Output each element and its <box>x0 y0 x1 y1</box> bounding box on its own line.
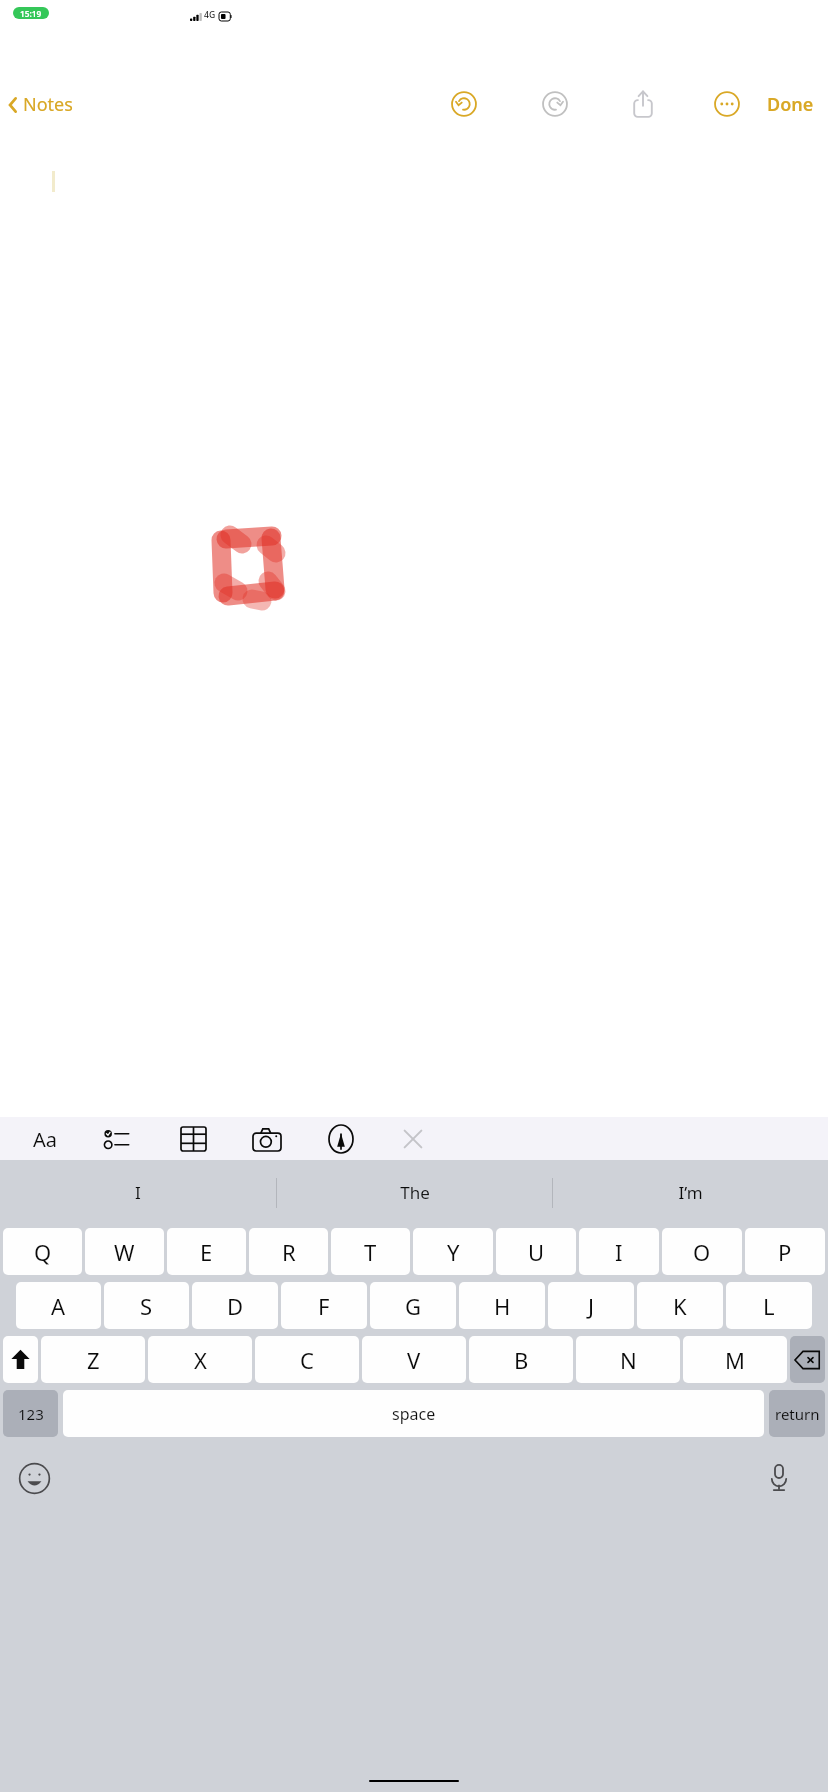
button[interactable]: return <box>769 1390 825 1437</box>
staticText: 123 <box>18 1404 44 1424</box>
button[interactable]: H <box>459 1282 545 1329</box>
staticText: Z <box>87 1345 100 1375</box>
staticText: E <box>200 1237 213 1267</box>
staticText: L <box>763 1291 775 1321</box>
button[interactable]: space <box>63 1390 764 1437</box>
staticText: D <box>227 1291 244 1321</box>
button[interactable]: A <box>16 1282 101 1329</box>
staticText: G <box>405 1291 422 1321</box>
button[interactable]: Z <box>41 1336 145 1383</box>
button[interactable]: Shift <box>3 1336 38 1383</box>
button[interactable]: Table <box>174 1119 212 1159</box>
button[interactable]: J <box>548 1282 634 1329</box>
button[interactable]: R <box>249 1228 328 1275</box>
button[interactable]: M <box>683 1336 787 1383</box>
button[interactable]: G <box>370 1282 456 1329</box>
staticText: S <box>140 1291 153 1321</box>
button[interactable]: I <box>579 1228 659 1275</box>
button[interactable]: The <box>277 1160 552 1225</box>
button[interactable]: I <box>0 1160 276 1225</box>
staticText: H <box>494 1291 511 1321</box>
button[interactable]: V <box>362 1336 466 1383</box>
button[interactable]: D <box>192 1282 278 1329</box>
staticText: Y <box>447 1237 460 1267</box>
staticText: K <box>673 1291 687 1321</box>
staticText: M <box>725 1345 745 1375</box>
staticText: F <box>318 1291 330 1321</box>
staticText: O <box>693 1237 711 1267</box>
staticText: 15:19 <box>20 8 42 19</box>
staticText: A <box>51 1291 66 1321</box>
button[interactable]: Done <box>757 84 824 125</box>
button[interactable]: Dictate <box>758 1457 800 1499</box>
staticText: X <box>194 1345 207 1375</box>
staticText: R <box>282 1237 296 1267</box>
staticText: C <box>300 1345 314 1375</box>
staticText: J <box>588 1291 595 1321</box>
staticText: Q <box>34 1237 52 1267</box>
button[interactable]: K <box>637 1282 723 1329</box>
staticText: V <box>407 1345 421 1375</box>
staticText: Done <box>767 92 814 117</box>
button[interactable]: B <box>469 1336 573 1383</box>
button[interactable]: Y <box>413 1228 493 1275</box>
button[interactable]: U <box>496 1228 576 1275</box>
staticText: The <box>400 1181 430 1204</box>
button[interactable]: Undo <box>442 82 486 126</box>
button[interactable]: Checklist <box>98 1119 136 1159</box>
button[interactable]: N <box>576 1336 680 1383</box>
staticText: B <box>514 1345 529 1375</box>
button[interactable]: Emoji <box>14 1458 54 1498</box>
button[interactable]: 123 <box>3 1390 58 1437</box>
staticText: I <box>135 1181 141 1204</box>
button[interactable]: T <box>331 1228 410 1275</box>
button[interactable]: X <box>148 1336 252 1383</box>
staticText: W <box>114 1237 135 1267</box>
button[interactable]: P <box>745 1228 825 1275</box>
button[interactable]: L <box>726 1282 812 1329</box>
button[interactable]: O <box>662 1228 742 1275</box>
button[interactable]: I’m <box>553 1160 828 1225</box>
button[interactable]: Markup <box>322 1119 360 1159</box>
button[interactable]: Backspace <box>790 1336 825 1383</box>
button[interactable]: Share <box>621 82 665 126</box>
staticText: return <box>775 1404 820 1424</box>
button[interactable]: W <box>85 1228 164 1275</box>
button[interactable]: Camera <box>248 1119 286 1159</box>
button[interactable]: Close keyboard <box>394 1119 432 1159</box>
staticText: T <box>364 1237 377 1267</box>
button[interactable]: Notes <box>7 92 73 117</box>
staticText: space <box>392 1403 436 1425</box>
staticText: I <box>615 1237 623 1267</box>
button[interactable]: Q <box>3 1228 82 1275</box>
staticText: Aa <box>33 1126 57 1153</box>
button[interactable]: E <box>167 1228 246 1275</box>
staticText: Notes <box>23 92 73 117</box>
staticText: U <box>528 1237 545 1267</box>
button[interactable]: Format <box>26 1119 64 1159</box>
button[interactable]: Redo <box>533 82 577 126</box>
button[interactable]: More <box>705 82 749 126</box>
button[interactable]: F <box>281 1282 367 1329</box>
button[interactable]: C <box>255 1336 359 1383</box>
staticText: N <box>620 1345 637 1375</box>
staticText: P <box>778 1237 792 1267</box>
button[interactable]: S <box>104 1282 189 1329</box>
staticText: 4G <box>204 9 216 21</box>
staticText: I’m <box>678 1181 703 1204</box>
